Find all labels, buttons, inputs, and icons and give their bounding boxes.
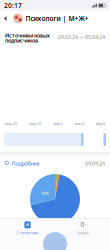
- button[interactable]: Back: [0, 11, 13, 26]
- staticText: Голоса: [76, 230, 88, 235]
- staticText: подписчиков: [5, 37, 38, 44]
- button[interactable]: Психологи | М+Ж+: [13, 13, 88, 23]
- button[interactable]: Статистика: [0, 221, 55, 235]
- staticText: 12%: [41, 190, 49, 196]
- button[interactable]: Подробнее: [5, 159, 39, 168]
- staticText: Психологи | М+Ж+: [25, 14, 88, 23]
- staticText: апр 4: [75, 121, 84, 126]
- staticText: мар 29: [5, 121, 17, 126]
- staticText: апр 2: [53, 121, 62, 126]
- staticText: Подробнее: [11, 160, 39, 167]
- staticText: мар 31: [29, 121, 41, 126]
- button[interactable]: Голоса: [55, 221, 110, 235]
- button[interactable]: Date range: [0, 133, 110, 146]
- staticText: Статистика: [17, 230, 38, 235]
- staticText: апр 6: [96, 121, 105, 126]
- staticText: 29.03.24 — 05.04.24: [58, 33, 105, 41]
- staticText: Источники новых: [5, 32, 50, 39]
- staticText: 20:17: [4, 1, 22, 10]
- staticText: 09.04.24: [85, 160, 105, 167]
